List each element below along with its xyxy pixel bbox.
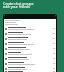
staticText: Create chat groups with your friends	[3, 1, 34, 9]
button[interactable]	[4, 46, 56, 51]
button[interactable]	[4, 26, 56, 31]
button[interactable]	[4, 66, 56, 71]
button[interactable]	[4, 61, 56, 66]
button[interactable]	[4, 51, 56, 56]
button[interactable]	[4, 56, 56, 61]
button[interactable]	[4, 36, 56, 41]
button[interactable]	[4, 71, 56, 72]
button[interactable]	[4, 41, 56, 46]
button[interactable]	[4, 31, 56, 36]
